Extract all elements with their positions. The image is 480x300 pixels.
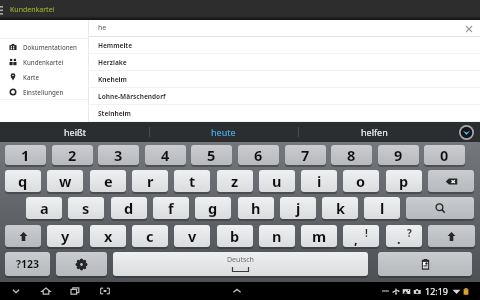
button[interactable]: ?123 bbox=[5, 252, 50, 276]
staticText: m bbox=[312, 226, 327, 246]
staticText: heute bbox=[211, 126, 236, 138]
staticText: 12:19 bbox=[425, 285, 449, 297]
button[interactable]: c bbox=[132, 225, 168, 247]
staticText: Hemmelte bbox=[98, 41, 133, 50]
staticText: 6 bbox=[254, 145, 263, 165]
button[interactable]: Lohne-Märschendorf bbox=[89, 88, 480, 105]
button[interactable]: z bbox=[217, 170, 253, 192]
button[interactable]: s bbox=[68, 197, 104, 219]
button[interactable]: g bbox=[195, 197, 231, 219]
button[interactable]: u bbox=[259, 170, 295, 192]
staticText: g bbox=[208, 198, 218, 218]
button[interactable]: 9 bbox=[378, 145, 419, 165]
button[interactable]: 7 bbox=[285, 145, 326, 165]
button[interactable]: p bbox=[386, 170, 422, 192]
staticText: v bbox=[188, 226, 197, 246]
button[interactable]: i bbox=[301, 170, 337, 192]
button[interactable]: Screenshot bbox=[92, 282, 118, 300]
button[interactable]: heute bbox=[149, 122, 298, 142]
staticText: x bbox=[104, 226, 113, 246]
staticText: k bbox=[336, 198, 345, 218]
staticText: 7 bbox=[301, 145, 310, 165]
button[interactable]: b bbox=[217, 225, 253, 247]
staticText: 2 bbox=[68, 145, 77, 165]
staticText: Steinheim bbox=[98, 109, 131, 118]
button[interactable]: e bbox=[90, 170, 126, 192]
staticText: p bbox=[399, 171, 409, 191]
button[interactable]: Backspace bbox=[428, 170, 474, 192]
button[interactable]: 4 bbox=[145, 145, 186, 165]
button[interactable]: , bbox=[343, 225, 379, 247]
button[interactable]: f bbox=[153, 197, 189, 219]
button[interactable]: j bbox=[280, 197, 316, 219]
button[interactable]: t bbox=[174, 170, 210, 192]
button[interactable]: Herzlake bbox=[89, 54, 480, 71]
staticText: h bbox=[251, 198, 261, 218]
staticText: 3 bbox=[114, 145, 123, 165]
button[interactable]: Clear search bbox=[463, 23, 474, 34]
staticText: s bbox=[82, 198, 90, 218]
button[interactable]: Recent apps bbox=[62, 282, 88, 300]
button[interactable]: Back bbox=[3, 282, 29, 300]
staticText: q bbox=[18, 171, 28, 191]
button[interactable]: Shift bbox=[5, 225, 41, 247]
button[interactable]: More suggestions bbox=[452, 122, 480, 142]
button[interactable]: 0 bbox=[424, 145, 465, 165]
button[interactable]: Shift bbox=[428, 225, 475, 247]
staticText: Einstellungen bbox=[23, 88, 64, 96]
button[interactable]: d bbox=[111, 197, 147, 219]
button[interactable]: Search bbox=[406, 197, 474, 219]
button[interactable]: Einstellungen bbox=[0, 84, 88, 99]
staticText: w bbox=[59, 171, 72, 191]
button[interactable]: y bbox=[47, 225, 83, 247]
staticText: d bbox=[124, 198, 134, 218]
staticText: Dokumentationen bbox=[23, 43, 77, 51]
button[interactable]: r bbox=[132, 170, 168, 192]
button[interactable]: Clipboard bbox=[378, 252, 472, 276]
button[interactable]: a bbox=[26, 197, 62, 219]
button[interactable]: Dokumentationen bbox=[0, 39, 88, 54]
button[interactable]: n bbox=[259, 225, 295, 247]
button[interactable]: 6 bbox=[238, 145, 279, 165]
button[interactable]: Kneheim bbox=[89, 71, 480, 88]
staticText: Kundenkartei bbox=[23, 58, 64, 66]
button[interactable]: Navigation menu bbox=[0, 0, 9, 20]
button[interactable]: h bbox=[238, 197, 274, 219]
button[interactable]: l bbox=[364, 197, 400, 219]
staticText: i bbox=[317, 171, 322, 191]
staticText: c bbox=[146, 226, 154, 246]
staticText: Herzlake bbox=[98, 58, 127, 67]
button[interactable]: x bbox=[90, 225, 126, 247]
button[interactable]: Hemmelte bbox=[89, 37, 480, 54]
button[interactable]: 3 bbox=[98, 145, 139, 165]
staticText: o bbox=[356, 171, 366, 191]
button[interactable]: Home bbox=[33, 282, 59, 300]
staticText: 8 bbox=[347, 145, 356, 165]
button[interactable]: Show keyboard bbox=[228, 282, 246, 300]
button[interactable]: 5 bbox=[191, 145, 232, 165]
button[interactable]: . bbox=[386, 225, 422, 247]
staticText: t bbox=[189, 171, 196, 191]
button[interactable]: k bbox=[322, 197, 358, 219]
staticText: Lohne-Märschendorf bbox=[98, 92, 166, 101]
staticText: heißt bbox=[64, 126, 86, 138]
button[interactable]: Steinheim bbox=[89, 105, 480, 122]
button[interactable]: q bbox=[5, 170, 41, 192]
staticText: Kundenkartei bbox=[10, 5, 55, 15]
staticText: e bbox=[104, 171, 113, 191]
button[interactable]: 1 bbox=[5, 145, 46, 165]
button[interactable]: Input settings bbox=[56, 252, 107, 276]
button[interactable]: m bbox=[301, 225, 337, 247]
button[interactable]: v bbox=[174, 225, 210, 247]
button[interactable]: heißt bbox=[0, 122, 149, 142]
staticText: l bbox=[380, 198, 385, 218]
button[interactable]: Deutsch bbox=[113, 252, 368, 276]
button[interactable]: helfen bbox=[298, 122, 450, 142]
button[interactable]: w bbox=[47, 170, 83, 192]
button[interactable]: Karte bbox=[0, 69, 88, 84]
button[interactable]: Kundenkartei bbox=[0, 54, 88, 69]
button[interactable]: 8 bbox=[331, 145, 372, 165]
button[interactable]: o bbox=[343, 170, 379, 192]
button[interactable]: 2 bbox=[52, 145, 93, 165]
staticText: r bbox=[147, 171, 154, 191]
